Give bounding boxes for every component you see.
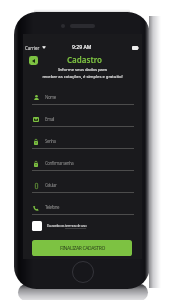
staticText: Confirmar senha — [45, 160, 74, 166]
staticText: Eu aceito os — [47, 223, 65, 229]
button[interactable]: Senha — [32, 135, 134, 149]
staticText: FINALIZAR CADASTRO — [60, 245, 105, 252]
staticText: Carrier — [25, 45, 40, 50]
staticText: Cadastro — [67, 54, 102, 65]
staticText: Email — [45, 116, 55, 122]
staticText: termos de uso — [65, 223, 87, 229]
button[interactable]: Telefone — [32, 201, 134, 215]
staticText: Nome — [45, 94, 56, 100]
staticText: 9:29 AM — [72, 44, 92, 51]
staticText: Celular — [45, 182, 57, 188]
staticText: Senha — [45, 138, 56, 144]
button[interactable]: Nome — [32, 91, 134, 105]
staticText: Telefone — [45, 204, 59, 210]
button[interactable]: Confirmar senha — [32, 157, 134, 171]
button[interactable]: Voltar — [29, 56, 38, 65]
staticText: Informe seus dados para receber as cotaç… — [42, 67, 123, 80]
button[interactable]: Email — [32, 113, 134, 127]
button[interactable]: Eu aceito os — [32, 220, 106, 231]
button[interactable]: Celular — [32, 179, 134, 193]
button[interactable]: FINALIZAR CADASTRO — [32, 240, 132, 256]
